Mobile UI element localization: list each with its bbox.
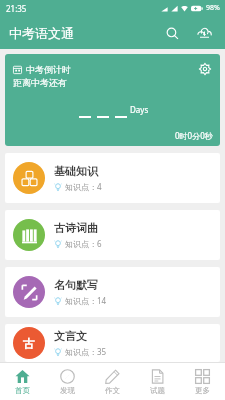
staticText: 名句默写	[54, 278, 98, 292]
staticText: 知识点：14	[65, 295, 107, 306]
staticText: 知识点：35	[65, 346, 107, 357]
staticText: 21:35	[6, 3, 27, 14]
staticText: 更多	[195, 386, 210, 395]
button[interactable]: 古诗词曲	[5, 210, 220, 260]
button[interactable]: 古	[5, 324, 220, 362]
button[interactable]: Settings	[197, 61, 213, 77]
button[interactable]: Search	[159, 20, 185, 46]
button[interactable]: 中考倒计时	[5, 54, 220, 146]
staticText: 古诗词曲	[54, 221, 98, 235]
button[interactable]: 首页	[0, 363, 45, 400]
button[interactable]: 基础知识	[5, 153, 220, 203]
staticText: 试题	[150, 386, 165, 395]
button[interactable]: 发现	[45, 363, 90, 400]
staticText: 基础知识	[54, 164, 98, 178]
staticText: 首页	[15, 386, 30, 395]
staticText: 98%	[206, 3, 220, 13]
button[interactable]: 更多	[180, 363, 225, 400]
staticText: 中考倒计时	[26, 64, 71, 75]
staticText: 文言文	[54, 329, 87, 343]
staticText: 古	[23, 336, 35, 351]
button[interactable]: 作文	[90, 363, 135, 400]
staticText: 作文	[105, 386, 120, 395]
staticText: Days	[130, 104, 149, 115]
staticText: 距离中考还有	[13, 77, 67, 88]
staticText: 发现	[60, 386, 75, 395]
staticText: 知识点：6	[65, 238, 102, 249]
staticText: 知识点：4	[65, 181, 102, 192]
staticText: 0时0分0秒	[175, 130, 213, 141]
button[interactable]: Cloud download	[191, 20, 217, 46]
button[interactable]: 试题	[135, 363, 180, 400]
button[interactable]: 名句默写	[5, 267, 220, 317]
staticText: 中考语文通	[9, 25, 74, 41]
